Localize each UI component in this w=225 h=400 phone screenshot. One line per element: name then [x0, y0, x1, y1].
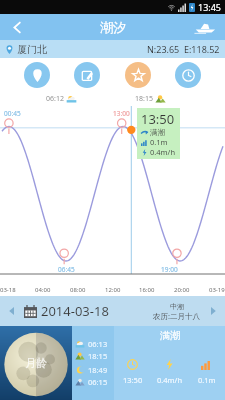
- staticText: 13:50: [141, 110, 175, 128]
- staticText: 12:00: [105, 286, 121, 294]
- staticText: 0.4m/h: [157, 375, 183, 385]
- staticText: 农历:二月十八: [153, 311, 201, 321]
- staticText: 0.1m: [198, 375, 216, 385]
- staticText: 08:00: [70, 286, 86, 294]
- staticText: 03-18: [0, 286, 16, 294]
- button[interactable]: Next day: [201, 296, 225, 326]
- staticText: 厦门北: [17, 43, 47, 56]
- button[interactable]: Favorite: [125, 62, 151, 88]
- button[interactable]: 厦门北: [5, 40, 220, 58]
- staticText: 06:13: [88, 339, 108, 349]
- staticText: 中潮: [170, 302, 184, 311]
- staticText: 0.4m/h: [150, 147, 176, 157]
- staticText: 2014-03-18: [41, 302, 109, 320]
- button[interactable]: Location: [24, 62, 50, 88]
- button[interactable]: Moon phase: [0, 326, 72, 400]
- staticText: 19:00: [161, 265, 178, 274]
- staticText: 满潮: [160, 329, 180, 342]
- button[interactable]: Previous day: [0, 296, 24, 326]
- staticText: 13:45: [198, 1, 222, 13]
- staticText: 06:12: [46, 94, 64, 104]
- staticText: 0.1m: [150, 137, 168, 147]
- staticText: N:23.65 E:118.52: [147, 43, 220, 55]
- staticText: 18:49: [88, 365, 108, 375]
- staticText: 06:45: [58, 265, 75, 274]
- staticText: 16:00: [139, 286, 155, 294]
- staticText: 潮汐: [100, 19, 126, 35]
- staticText: 18:15: [88, 351, 108, 361]
- staticText: 04:00: [35, 286, 51, 294]
- button[interactable]: Time: [175, 62, 201, 88]
- staticText: 18:15: [135, 94, 153, 104]
- staticText: 06:15: [88, 377, 108, 387]
- staticText: 03-19: [209, 286, 225, 294]
- staticText: 20:00: [174, 286, 190, 294]
- button[interactable]: Ship: [185, 14, 225, 40]
- button[interactable]: 06:13: [72, 326, 114, 400]
- staticText: 月龄: [25, 356, 47, 370]
- staticText: 满潮: [150, 128, 165, 137]
- button[interactable]: Edit: [74, 62, 100, 88]
- button[interactable]: 13:50: [141, 110, 176, 157]
- button[interactable]: Back: [0, 14, 34, 40]
- button[interactable]: 满潮: [114, 326, 225, 400]
- staticText: 13:00: [113, 109, 130, 118]
- staticText: 00:45: [4, 109, 21, 118]
- staticText: 13:50: [123, 375, 143, 385]
